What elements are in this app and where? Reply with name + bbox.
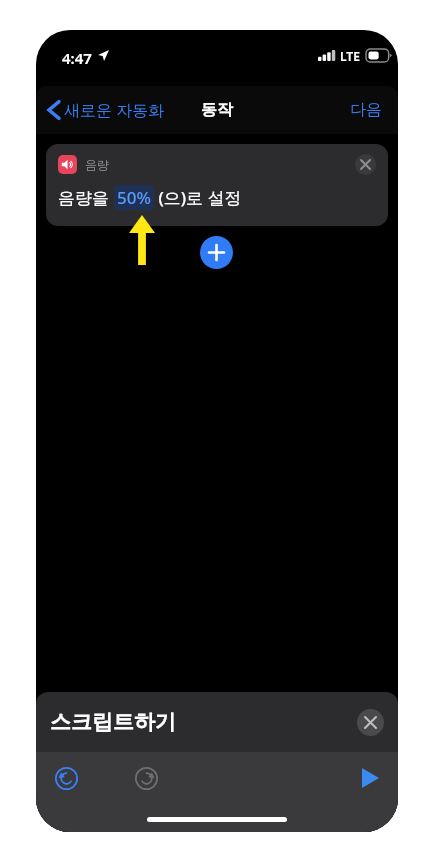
staticText: 음량을 [58,186,114,209]
button[interactable]: 닫기 [357,709,384,736]
staticText: 다음 [350,100,382,120]
button[interactable]: 음량 [46,144,388,226]
button[interactable]: 50% [114,185,154,210]
staticText: 새로운 자동화 [64,99,165,121]
staticText: LTE [340,48,360,64]
button[interactable]: 실행 취소 [48,760,84,796]
button[interactable]: 새로운 자동화 [44,95,169,125]
button[interactable]: 다시 실행 [128,760,164,796]
staticText: 음량 [85,157,109,172]
staticText: 4:47 [62,48,92,68]
staticText: 50% [117,186,151,209]
staticText: 동작 [201,100,233,120]
button[interactable]: 동작 추가 [200,236,233,269]
staticText: (으)로 설정 [154,186,242,209]
button[interactable]: 다음 [344,94,388,126]
staticText: 스크립트하기 [50,709,176,735]
button[interactable]: 실행 [352,760,388,796]
button[interactable]: 동작 삭제 [355,154,376,175]
